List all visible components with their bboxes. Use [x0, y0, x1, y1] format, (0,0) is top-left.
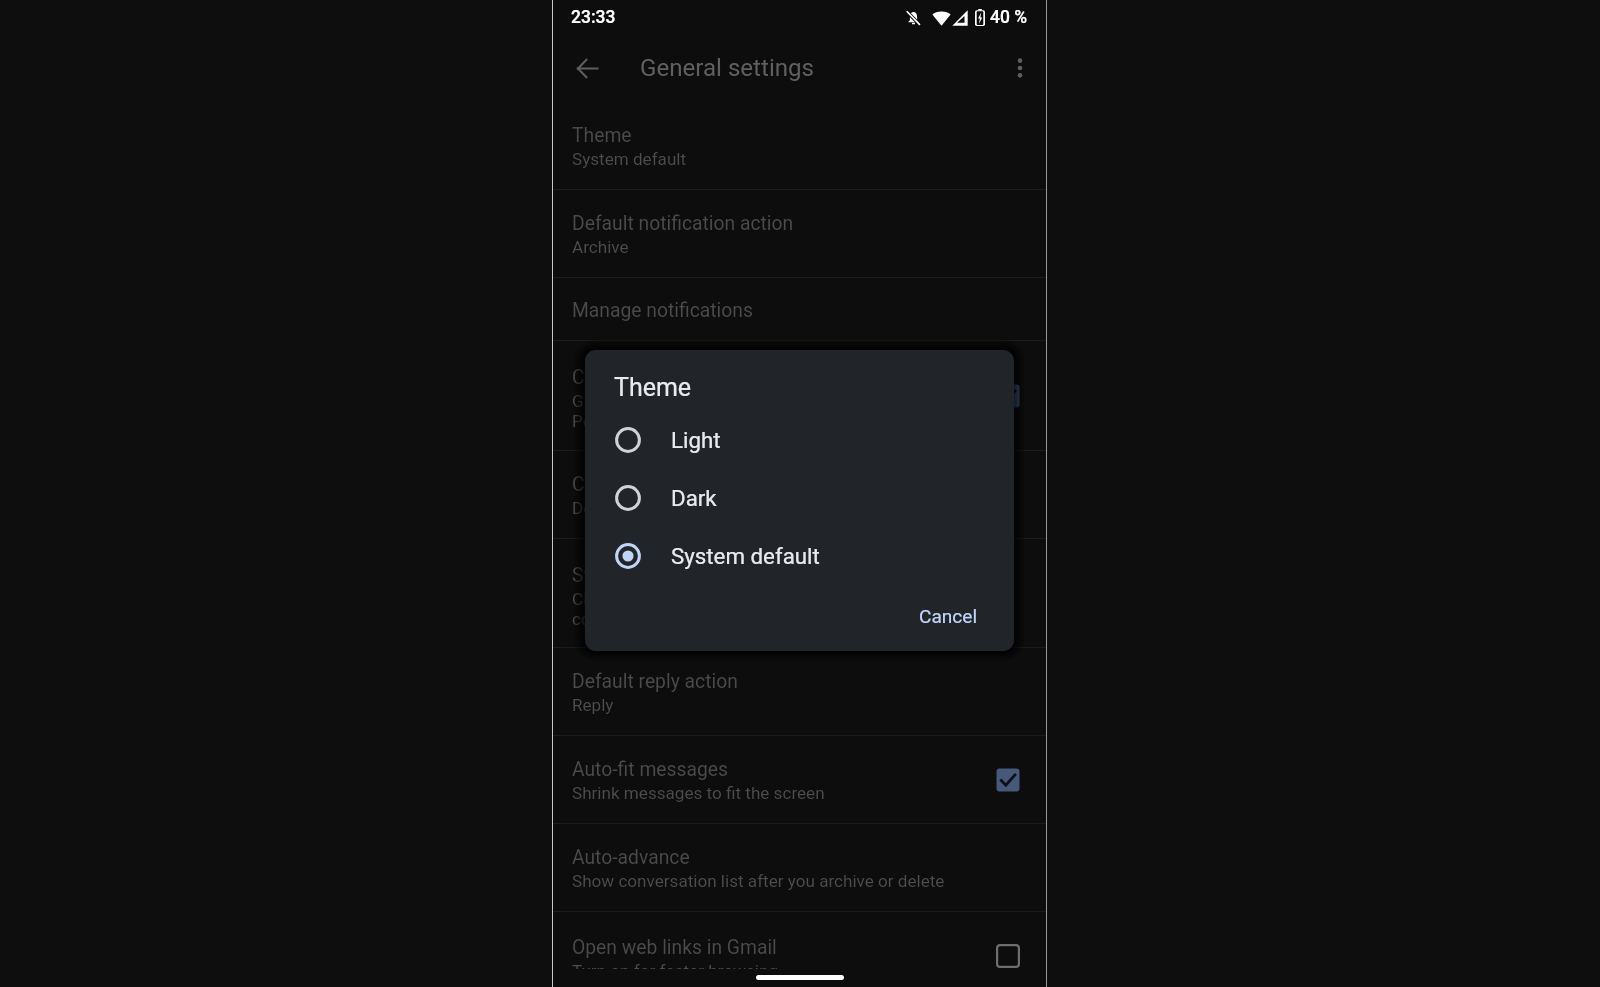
- button[interactable]: Theme: [553, 102, 1046, 189]
- staticText: System default: [671, 543, 820, 569]
- button[interactable]: Dark: [585, 473, 1014, 523]
- staticText: System default: [572, 149, 687, 169]
- staticText: Auto-fit messages: [572, 758, 728, 781]
- button[interactable]: System default: [585, 531, 1014, 581]
- button[interactable]: Auto-fit messages: [553, 736, 1046, 823]
- button[interactable]: Auto-advance: [553, 824, 1046, 911]
- staticText: Theme: [614, 373, 692, 402]
- staticText: 23:33: [571, 7, 616, 28]
- staticText: Person: [572, 411, 626, 431]
- staticText: Shrink messages to fit the screen: [572, 783, 825, 803]
- button[interactable]: More options: [996, 44, 1044, 92]
- button[interactable]: Swipe actions: [553, 539, 1046, 647]
- button[interactable]: Default notification action: [553, 190, 1046, 277]
- button[interactable]: Cancel: [910, 598, 987, 634]
- staticText: Conversation list density: [572, 473, 783, 496]
- button[interactable]: Navigate up: [563, 44, 611, 92]
- staticText: Default notification action: [572, 212, 794, 235]
- staticText: Archive: [572, 237, 629, 257]
- staticText: Default reply action: [572, 670, 738, 693]
- staticText: Turn on for faster browsing: [572, 961, 779, 981]
- button[interactable]: Default reply action: [553, 648, 1046, 735]
- staticText: Light: [671, 427, 721, 453]
- staticText: 40 %: [990, 7, 1028, 28]
- button[interactable]: Open web links in Gmail: [553, 912, 1046, 987]
- button[interactable]: Light: [585, 415, 1014, 465]
- staticText: General settings: [640, 54, 815, 82]
- staticText: Cancel: [919, 605, 978, 627]
- staticText: controls: [572, 609, 635, 629]
- staticText: Change custom swipe: [572, 589, 741, 609]
- staticText: Group emails from the same: [572, 391, 789, 411]
- staticText: Theme: [572, 124, 632, 147]
- staticText: Open web links in Gmail: [572, 936, 777, 959]
- staticText: Show conversation list after you archive…: [572, 871, 945, 891]
- staticText: Swipe actions: [572, 564, 692, 587]
- staticText: Auto-advance: [572, 846, 690, 869]
- button[interactable]: Conversation view: [553, 341, 1046, 450]
- staticText: Conversation view: [572, 366, 729, 389]
- button[interactable]: Manage notifications: [553, 278, 1046, 340]
- staticText: Manage notifications: [572, 299, 753, 322]
- button[interactable]: Conversation list density: [553, 451, 1046, 538]
- staticText: Dark: [671, 485, 717, 511]
- staticText: Reply: [572, 695, 614, 715]
- staticText: Default: [572, 498, 627, 518]
